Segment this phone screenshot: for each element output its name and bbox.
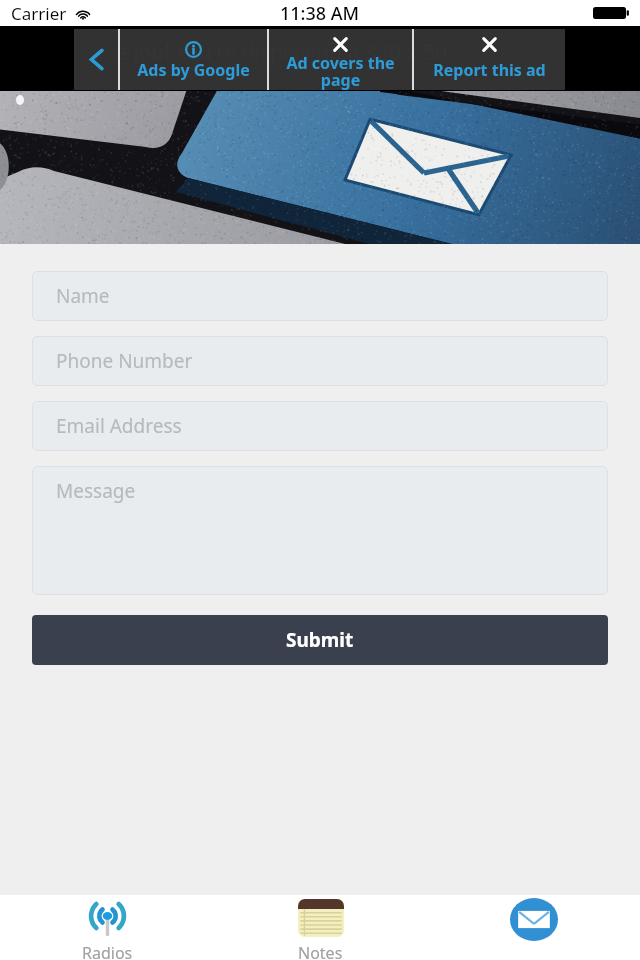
button[interactable]: Phone Number (32, 336, 608, 386)
staticText: Report this ad (433, 59, 546, 81)
button[interactable]: Submit (32, 615, 608, 665)
staticText: Email Address (56, 413, 182, 439)
staticText: Phone Number (56, 348, 193, 374)
button[interactable]: Back (74, 29, 118, 90)
staticText: Name (56, 283, 110, 309)
staticText: Ad covers the page (286, 52, 395, 90)
button[interactable]: Name (32, 271, 608, 321)
button[interactable]: Notes (214, 895, 427, 960)
staticText: Ads by Google (137, 59, 250, 81)
staticText: 11:38 AM (280, 1, 360, 26)
button[interactable]: Radios (0, 895, 214, 960)
button[interactable]: Ad covers the page (269, 29, 412, 90)
button[interactable]: Ads by Google (120, 29, 267, 90)
button[interactable]: Email Address (32, 401, 608, 451)
staticText: Carrier (11, 2, 67, 25)
button[interactable]: Mail (427, 895, 640, 960)
staticText: e job! You're displaying a 320 x 50 (116, 38, 447, 67)
button[interactable]: Message (32, 466, 608, 595)
button[interactable]: Report this ad (414, 29, 565, 90)
staticText: Radios (82, 942, 133, 960)
staticText: Submit (286, 627, 354, 653)
staticText: Message (56, 478, 136, 504)
staticText: Notes (298, 942, 343, 960)
